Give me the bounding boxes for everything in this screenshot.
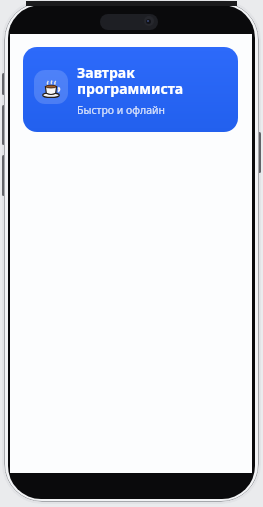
staticText: Завтрак программиста [77,63,184,98]
button[interactable]: Завтрак программиста [23,47,238,132]
staticText: Быстро и офлайн [77,103,166,117]
